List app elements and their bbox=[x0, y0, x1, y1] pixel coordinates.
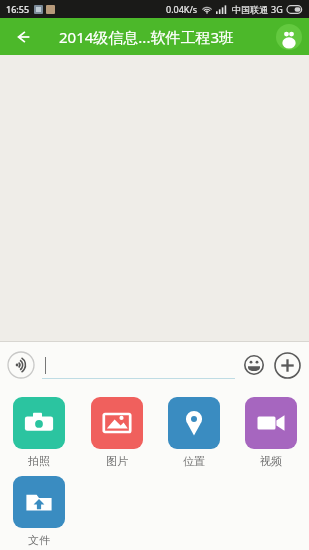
staticText: 图片 bbox=[106, 454, 128, 468]
button[interactable]: 图片 bbox=[78, 393, 155, 472]
button[interactable]: Voice message bbox=[6, 350, 36, 380]
button[interactable]: More options bbox=[271, 349, 303, 381]
staticText: 16:55 bbox=[6, 3, 30, 15]
button[interactable]: 位置 bbox=[155, 393, 232, 472]
staticText: 中国联通 bbox=[232, 4, 268, 15]
button[interactable]: Back bbox=[8, 22, 38, 52]
staticText: 拍照 bbox=[28, 454, 50, 468]
staticText: 2014级信息...软件工程3班 bbox=[59, 27, 234, 47]
button[interactable]: 拍照 bbox=[0, 393, 78, 472]
staticText: 视频 bbox=[260, 454, 282, 468]
button[interactable]: 文件 bbox=[0, 472, 77, 550]
button[interactable] bbox=[42, 350, 235, 380]
button[interactable]: Emoji bbox=[239, 350, 269, 380]
staticText: 0.04K/s bbox=[166, 3, 198, 15]
button[interactable]: Group members bbox=[276, 24, 302, 50]
staticText: 位置 bbox=[183, 454, 205, 468]
staticText: 文件 bbox=[28, 533, 50, 546]
staticText: 3G bbox=[271, 3, 283, 15]
button[interactable]: 视频 bbox=[232, 393, 309, 472]
